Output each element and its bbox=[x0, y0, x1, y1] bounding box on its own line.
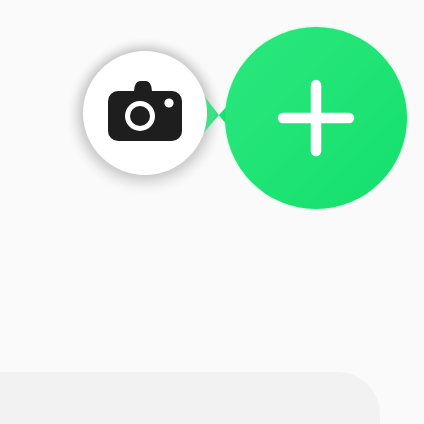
button[interactable]: Add bbox=[0, 0, 424, 424]
button[interactable]: Camera bbox=[0, 0, 424, 424]
